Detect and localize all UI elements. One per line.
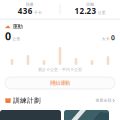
staticText: 公里: [98, 10, 106, 15]
button[interactable]: Training plan card: [0, 110, 61, 120]
staticText: 開始運動: [50, 80, 70, 86]
staticText: 累計 0 公里・平均 0 公里: [38, 67, 82, 72]
staticText: 訓練計劃: [13, 96, 41, 105]
staticText: 0: [111, 33, 115, 42]
staticText: 千卡: [34, 10, 42, 15]
staticText: 12.23: [75, 6, 97, 16]
staticText: 大卡: [102, 36, 110, 41]
staticText: 436: [18, 6, 33, 16]
button[interactable]: Training plan photo card: [64, 110, 109, 120]
staticText: 運動: [12, 23, 22, 30]
button[interactable]: 查看全部: [96, 98, 115, 103]
staticText: 熱量: [26, 2, 34, 7]
staticText: 查看全部: [96, 98, 112, 103]
staticText: 距離: [86, 2, 94, 7]
button[interactable]: 開始運動: [5, 77, 115, 89]
staticText: 公里: [12, 36, 20, 41]
staticText: 0: [5, 29, 11, 43]
